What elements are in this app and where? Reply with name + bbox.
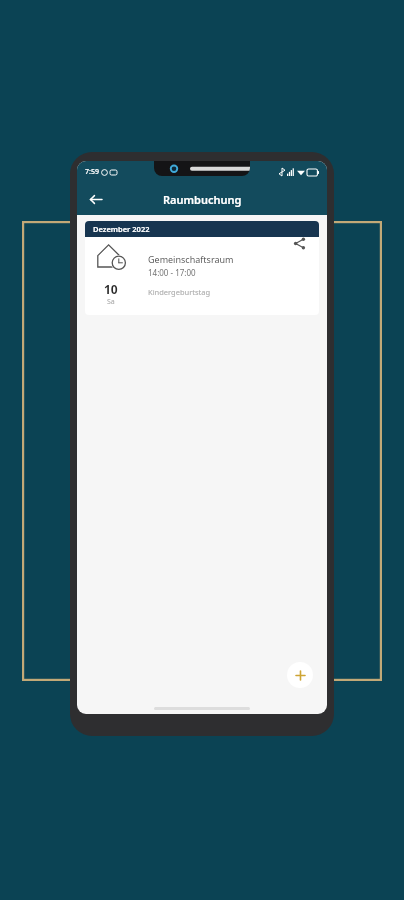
staticText: Dezember 2022 — [93, 224, 150, 234]
button[interactable]: Add booking — [287, 662, 313, 688]
staticText: 10 — [104, 281, 118, 297]
button[interactable]: Back — [81, 185, 109, 213]
staticText: Gemeinschaftsraum — [148, 253, 234, 265]
staticText: 14:00 - 17:00 — [148, 267, 196, 278]
button[interactable]: Dezember 2022 — [85, 221, 319, 315]
staticText: 7:59 — [85, 167, 99, 177]
staticText: Sa — [107, 297, 115, 307]
staticText: Kindergeburtstag — [148, 287, 211, 297]
button[interactable]: Share — [279, 237, 319, 250]
staticText: Raumbuchung — [163, 192, 242, 207]
